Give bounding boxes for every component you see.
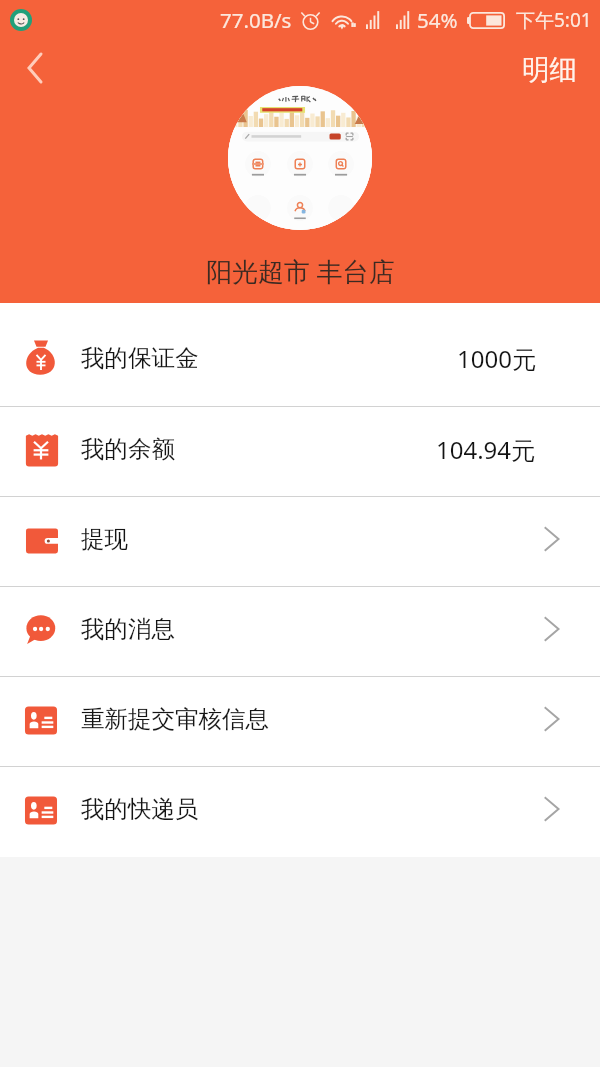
staticText: 我的保证金 xyxy=(81,343,199,373)
button[interactable]: 提现 xyxy=(0,497,600,587)
staticText: 1000元 xyxy=(457,342,536,375)
button[interactable]: Store avatar xyxy=(228,86,372,230)
button[interactable]: 我的快递员 xyxy=(0,767,600,857)
button[interactable]: Back xyxy=(10,43,58,91)
staticText: 明细 xyxy=(522,53,577,88)
staticText: 我的消息 xyxy=(81,614,175,644)
staticText: 我的快递员 xyxy=(81,794,199,824)
button[interactable]: 明细 xyxy=(509,45,590,96)
staticText: 54% xyxy=(417,6,458,34)
staticText: 阳光超市 丰台店 xyxy=(206,253,395,289)
button[interactable]: 阳光超市 丰台店 xyxy=(206,253,395,289)
button[interactable]: 重新提交审核信息 xyxy=(0,677,600,767)
staticText: 77.0B/s xyxy=(220,6,292,34)
button[interactable]: 我的余额 xyxy=(0,407,600,497)
staticText: 我的余额 xyxy=(81,434,175,464)
staticText: 104.94元 xyxy=(436,433,536,466)
staticText: 下午5:01 xyxy=(516,7,592,33)
button[interactable]: 我的消息 xyxy=(0,587,600,677)
button[interactable]: 我的保证金 xyxy=(0,303,600,407)
staticText: 提现 xyxy=(81,524,128,554)
staticText: 重新提交审核信息 xyxy=(81,704,269,734)
